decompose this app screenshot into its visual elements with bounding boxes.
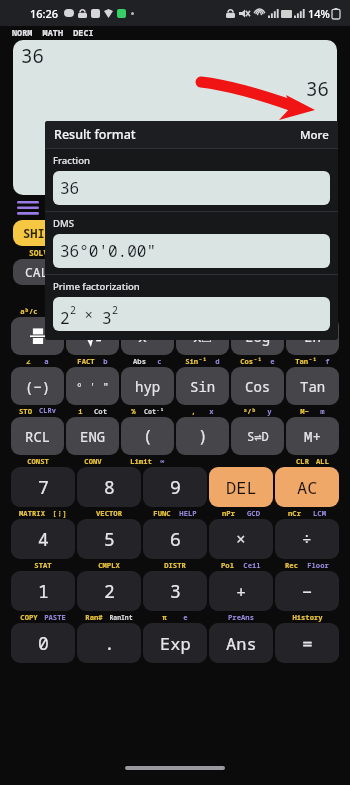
button[interactable]: DMS [45, 212, 338, 274]
staticText: S⇌D [247, 428, 269, 444]
staticText: mod [96, 306, 109, 316]
staticText: ENG [80, 427, 106, 446]
button[interactable]: hyp [121, 367, 174, 405]
staticText: M− [300, 406, 309, 416]
button[interactable]: 5 [77, 519, 141, 559]
staticText: 14% [308, 6, 330, 21]
staticText: CMPLX [98, 560, 120, 570]
staticText: Tan [300, 377, 326, 396]
staticText: DEL [226, 476, 257, 499]
button[interactable]: x² [121, 317, 174, 355]
staticText: MATRIX [19, 508, 45, 518]
staticText: × [76, 305, 102, 324]
button[interactable]: ENG [66, 417, 119, 455]
staticText: PreAns [228, 612, 254, 622]
button[interactable]: − [275, 571, 339, 611]
staticText: Log [245, 327, 271, 346]
button[interactable]: 36 [13, 40, 337, 195]
staticText: ∞ [160, 456, 165, 466]
staticText: Fraction [53, 154, 90, 167]
staticText: π [162, 612, 167, 622]
staticText: 36 [306, 76, 329, 102]
staticText: a [44, 356, 49, 366]
staticText: Result format [54, 126, 136, 143]
button[interactable]: 2 [77, 571, 141, 611]
button[interactable]: . [77, 623, 141, 663]
button[interactable]: = [275, 623, 339, 663]
button[interactable]: Ln [286, 317, 339, 355]
staticText: d [215, 356, 220, 366]
button[interactable]: Log [231, 317, 284, 355]
button[interactable]: Sin [176, 367, 229, 405]
button[interactable]: Tan [286, 367, 339, 405]
button[interactable]: M+ [286, 417, 339, 455]
button[interactable]: 4 [11, 519, 75, 559]
staticText: 2 [104, 579, 115, 604]
staticText: Rec [285, 560, 298, 570]
staticText: DISTR [164, 560, 186, 570]
staticText: History [292, 612, 323, 622]
button[interactable]: x□ [176, 317, 229, 355]
button[interactable]: 1 [11, 571, 75, 611]
staticText: Cot⁻¹ [144, 407, 164, 416]
button[interactable]: Cos [231, 367, 284, 405]
staticText: 36 [21, 43, 44, 69]
staticText: Cos⁻¹ [240, 356, 262, 366]
button[interactable]: AC [275, 467, 339, 507]
staticText: 6 [170, 527, 181, 552]
button[interactable]: ) [176, 417, 229, 455]
staticText: ° ' " [76, 379, 109, 394]
button[interactable]: Fraction key [11, 317, 64, 355]
button[interactable]: (−) [11, 367, 64, 405]
staticText: Ln [304, 327, 321, 346]
staticText: Floor [307, 560, 329, 570]
button[interactable]: S⇌D [231, 417, 284, 455]
staticText: AC [297, 476, 318, 499]
button[interactable]: SHIFT [13, 220, 69, 246]
button[interactable]: CALC [13, 259, 69, 285]
button[interactable]: 9 [143, 467, 207, 507]
button[interactable]: ÷ [275, 519, 339, 559]
staticText: 9 [170, 475, 181, 500]
button[interactable]: + [209, 571, 273, 611]
button[interactable]: DEL [209, 467, 273, 507]
staticText: CONST [27, 456, 49, 466]
staticText: VECTOR [96, 508, 122, 518]
button[interactable]: Ans [209, 623, 273, 663]
button[interactable]: × [209, 519, 273, 559]
button[interactable]: 6 [143, 519, 207, 559]
staticText: x² [138, 326, 157, 346]
staticText: e [270, 356, 275, 366]
button[interactable]: ° ' " [66, 367, 119, 405]
button[interactable]: 3 [143, 571, 207, 611]
button[interactable]: ( [121, 417, 174, 455]
staticText: STAT [34, 560, 52, 570]
staticText: More [300, 127, 329, 143]
button[interactable]: Exp [143, 623, 207, 663]
button[interactable]: Prime factorization [45, 275, 338, 337]
button[interactable]: 0 [11, 623, 75, 663]
staticText: b [103, 356, 108, 366]
staticText: Exp [160, 632, 191, 655]
staticText: Prime factorization [53, 280, 140, 293]
staticText: CLR [296, 456, 309, 466]
button[interactable]: RCL [11, 417, 64, 455]
button[interactable]: Menu [13, 199, 43, 217]
staticText: , [191, 406, 196, 416]
staticText: Cot [94, 406, 107, 416]
button[interactable]: 7 [11, 467, 75, 507]
button[interactable]: Fraction [45, 149, 338, 211]
staticText: Sin [190, 377, 216, 396]
staticText: Sin⁻¹ [185, 356, 207, 366]
staticText: SOLVE [29, 247, 53, 258]
staticText: ³√□ [76, 306, 89, 316]
staticText: SHIFT [23, 225, 60, 241]
staticText: x [209, 406, 214, 416]
staticText: ÷R [46, 306, 55, 316]
button[interactable]: Fraction key [66, 317, 119, 355]
staticText: DMS [53, 217, 74, 230]
button[interactable]: More [297, 124, 332, 146]
button[interactable]: 8 [77, 467, 141, 507]
staticText: ÷ [302, 528, 312, 550]
